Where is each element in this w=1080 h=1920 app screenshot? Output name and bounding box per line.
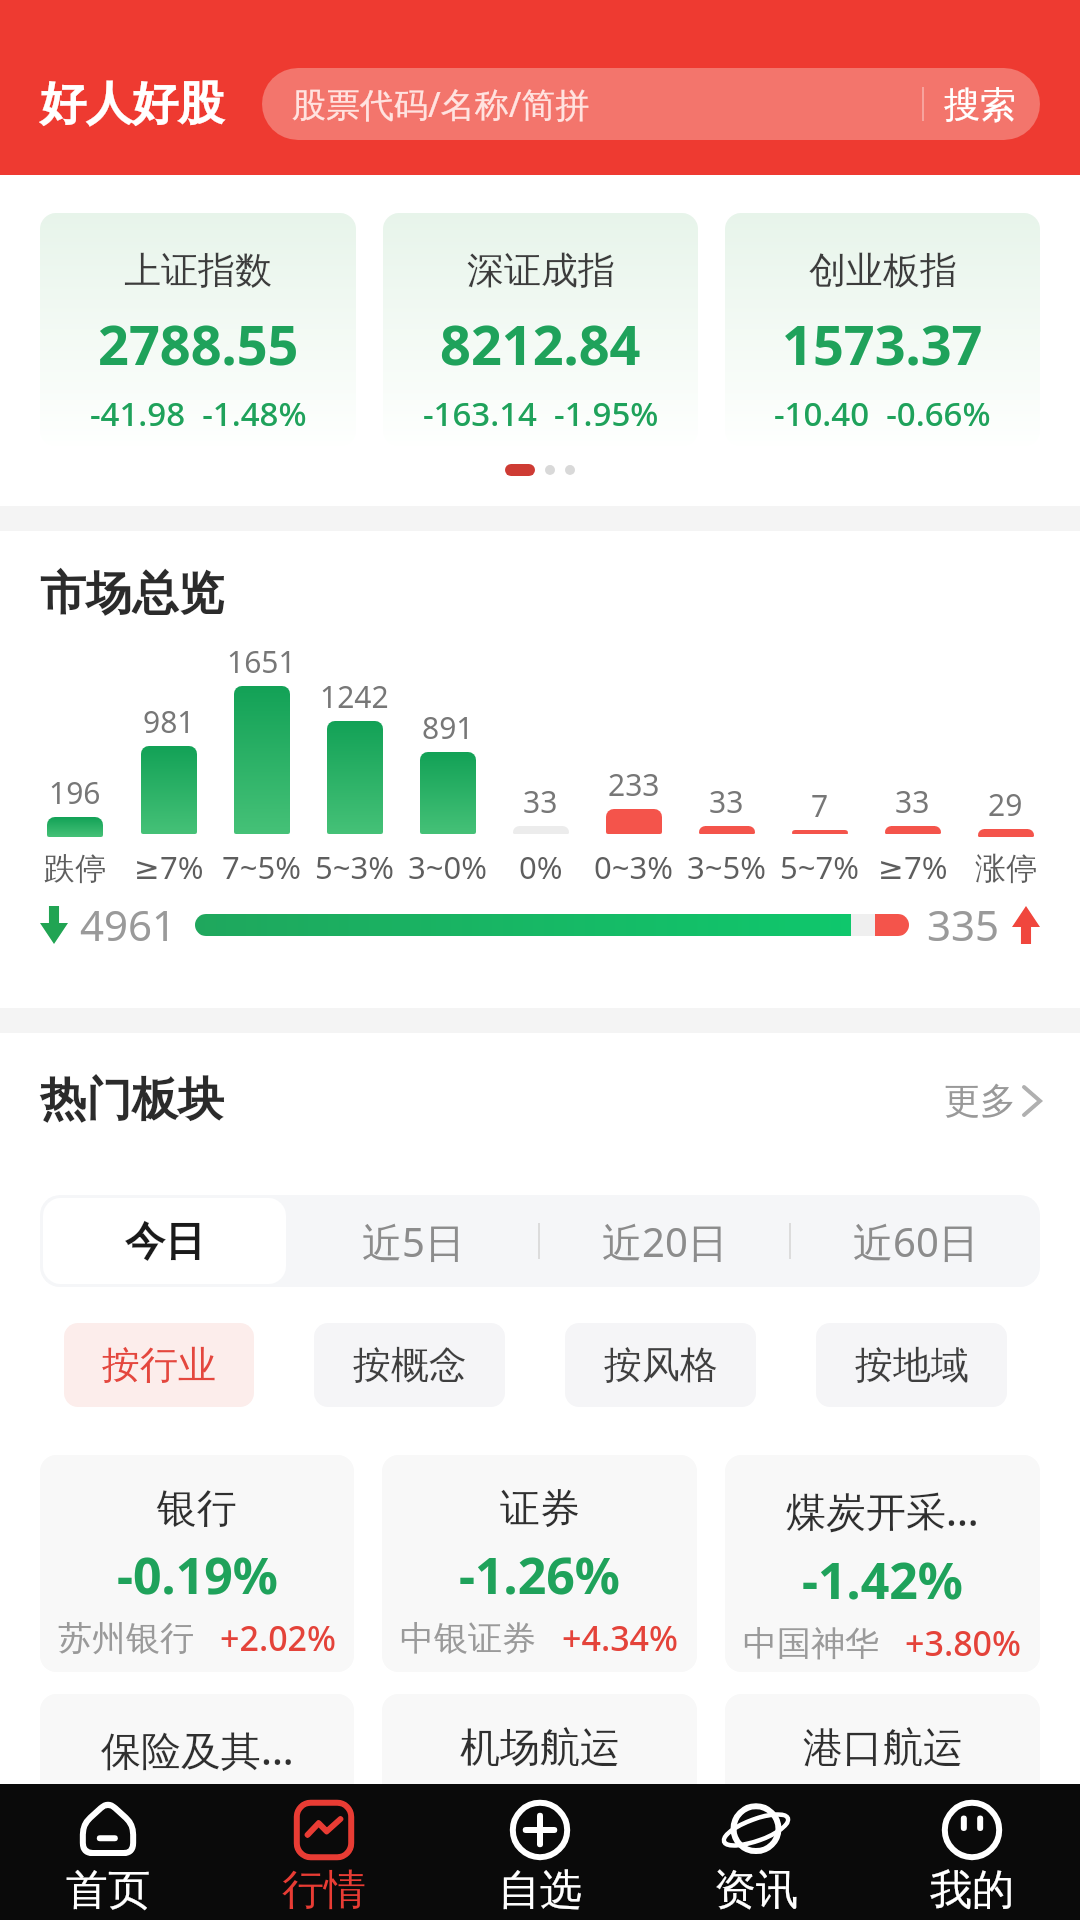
button[interactable]: 自选 bbox=[432, 1784, 648, 1920]
staticText: 中银证券 bbox=[400, 1617, 536, 1660]
staticText: -41.98 -1.48% bbox=[90, 391, 307, 436]
staticText: 按地域 bbox=[855, 1341, 969, 1389]
button[interactable]: 今日 bbox=[43, 1198, 286, 1284]
button[interactable]: 机场航运 bbox=[382, 1694, 697, 1911]
staticText: 5~3% bbox=[315, 846, 394, 888]
staticText: 335 bbox=[927, 896, 1000, 953]
staticText: +3.80% bbox=[905, 1620, 1022, 1666]
staticText: 1573.37 bbox=[782, 307, 983, 381]
staticText: 保险及其... bbox=[101, 1722, 294, 1777]
staticText: 按风格 bbox=[604, 1341, 718, 1389]
staticText: 股票代码/名称/简拼 bbox=[292, 81, 590, 127]
staticText: -0.19% bbox=[117, 1541, 278, 1609]
button[interactable]: 近5日 bbox=[289, 1195, 538, 1287]
button[interactable]: 资讯 bbox=[648, 1784, 864, 1920]
staticText: 8212.84 bbox=[440, 307, 641, 381]
staticText: 热门板块 bbox=[40, 1071, 224, 1129]
staticText: ≥7% bbox=[878, 846, 948, 888]
staticText: 按行业 bbox=[102, 1341, 216, 1389]
button[interactable]: 按地域 bbox=[816, 1323, 1007, 1407]
staticText: 创业板指 bbox=[809, 247, 957, 294]
staticText: -1.42% bbox=[802, 1546, 963, 1614]
button[interactable]: 我的 bbox=[864, 1784, 1080, 1920]
staticText: 891 bbox=[422, 707, 474, 748]
staticText: 233 bbox=[608, 764, 660, 805]
button[interactable]: 港口航运 bbox=[725, 1694, 1040, 1911]
button[interactable]: 更多 bbox=[944, 1078, 1040, 1123]
button[interactable]: 银行 bbox=[40, 1455, 354, 1672]
staticText: 今日 bbox=[125, 1216, 205, 1266]
staticText: 近60日 bbox=[853, 1214, 979, 1269]
staticText: 银行 bbox=[157, 1483, 237, 1533]
button[interactable]: 证券 bbox=[382, 1455, 697, 1672]
staticText: 上证指数 bbox=[124, 247, 272, 294]
staticText: 好人好股 bbox=[40, 75, 224, 133]
staticText: 更多 bbox=[944, 1078, 1016, 1123]
button[interactable]: 按行业 bbox=[64, 1323, 254, 1407]
staticText: 按概念 bbox=[353, 1341, 467, 1389]
staticText: 资讯 bbox=[714, 1864, 798, 1917]
staticText: 苏州银行 bbox=[58, 1617, 194, 1660]
staticText: 机场航运 bbox=[460, 1722, 620, 1772]
staticText: 跌停 bbox=[44, 849, 106, 888]
staticText: 29 bbox=[988, 784, 1023, 825]
staticText: 港口航运 bbox=[803, 1722, 963, 1772]
staticText: 0~3% bbox=[594, 846, 673, 888]
staticText: 自选 bbox=[498, 1864, 582, 1917]
button[interactable]: 深证成指 bbox=[383, 213, 698, 446]
staticText: 涨停 bbox=[975, 849, 1037, 888]
button[interactable]: 股票代码/名称/简拼 bbox=[262, 68, 1040, 140]
button[interactable]: 搜索 bbox=[944, 82, 1016, 127]
staticText: 3~0% bbox=[408, 846, 487, 888]
staticText: 中国神华 bbox=[743, 1622, 879, 1665]
button[interactable]: 按风格 bbox=[565, 1323, 756, 1407]
staticText: -10.40 -0.66% bbox=[774, 391, 991, 436]
staticText: 4961 bbox=[80, 896, 177, 953]
staticText: ≥7% bbox=[134, 846, 204, 888]
staticText: 33 bbox=[709, 781, 744, 822]
button[interactable]: 煤炭开采... bbox=[725, 1455, 1040, 1672]
staticText: +2.02% bbox=[220, 1615, 337, 1661]
button[interactable]: 首页 bbox=[0, 1784, 216, 1920]
staticText: 3~5% bbox=[687, 846, 766, 888]
staticText: 近20日 bbox=[602, 1214, 728, 1269]
staticText: 行情 bbox=[282, 1864, 366, 1917]
staticText: 近5日 bbox=[362, 1214, 465, 1269]
staticText: 33 bbox=[523, 781, 558, 822]
staticText: 33 bbox=[895, 781, 930, 822]
staticText: 证券 bbox=[500, 1483, 580, 1533]
staticText: 196 bbox=[49, 772, 101, 813]
staticText: 首页 bbox=[66, 1864, 150, 1917]
staticText: 市场总览 bbox=[40, 565, 224, 623]
staticText: 7~5% bbox=[222, 846, 301, 888]
staticText: 0% bbox=[519, 846, 563, 888]
staticText: 1651 bbox=[227, 641, 296, 682]
staticText: 5~7% bbox=[780, 846, 859, 888]
staticText: +4.34% bbox=[562, 1615, 679, 1661]
button[interactable]: 上证指数 bbox=[40, 213, 356, 446]
staticText: 1242 bbox=[320, 676, 389, 717]
staticText: -163.14 -1.95% bbox=[423, 391, 659, 436]
button[interactable]: 创业板指 bbox=[725, 213, 1040, 446]
staticText: -1.26% bbox=[459, 1541, 620, 1609]
staticText: 7 bbox=[811, 785, 829, 826]
button[interactable]: 近60日 bbox=[791, 1195, 1040, 1287]
button[interactable]: 按概念 bbox=[314, 1323, 505, 1407]
staticText: 981 bbox=[143, 701, 195, 742]
button[interactable]: 行情 bbox=[216, 1784, 432, 1920]
button[interactable]: 保险及其... bbox=[40, 1694, 354, 1911]
staticText: 煤炭开采... bbox=[786, 1483, 979, 1538]
button[interactable]: 近20日 bbox=[540, 1195, 789, 1287]
staticText: 深证成指 bbox=[467, 247, 615, 294]
staticText: 2788.55 bbox=[98, 307, 299, 381]
staticText: 我的 bbox=[930, 1864, 1014, 1917]
